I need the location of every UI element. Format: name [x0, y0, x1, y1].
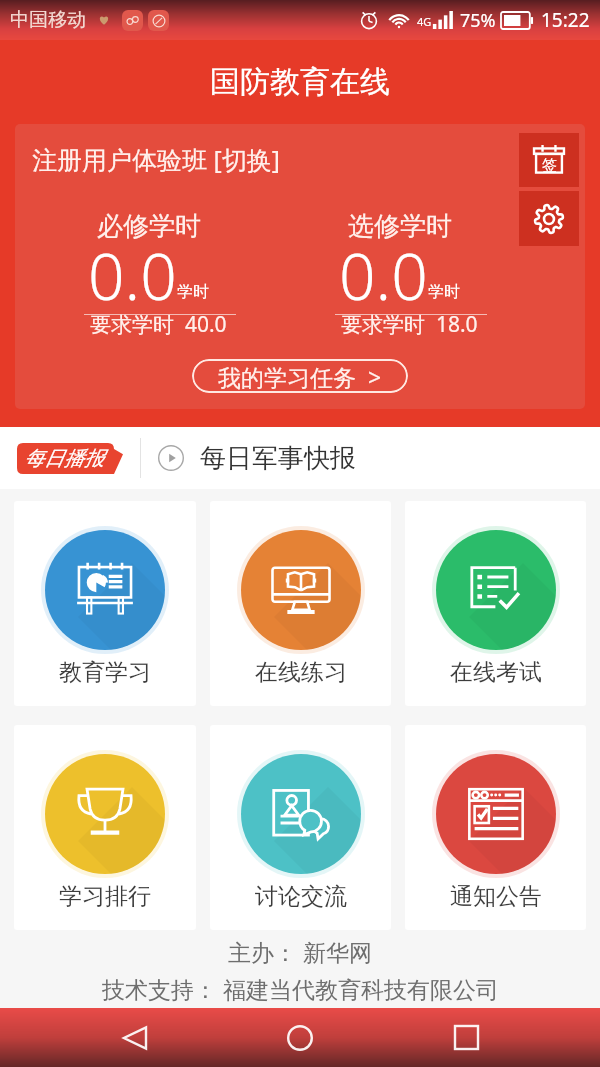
staticText: 必修学时 [97, 210, 201, 243]
staticText: 教育学习 [59, 658, 151, 687]
staticText: 4G [417, 14, 432, 29]
staticText: 学时 [428, 282, 460, 302]
button[interactable]: 设置 [519, 191, 579, 246]
button[interactable]: 在线练习 [210, 501, 391, 706]
button[interactable]: 通知公告 [405, 725, 586, 930]
button[interactable]: 签到 [519, 133, 579, 187]
staticText: 0.0 [339, 232, 428, 319]
staticText: 在线练习 [255, 658, 347, 687]
button[interactable]: 教育学习 [14, 501, 196, 706]
staticText: 要求学时 40.0 [90, 310, 227, 339]
staticText: 要求学时 18.0 [341, 310, 478, 339]
staticText: 学时 [177, 282, 209, 302]
staticText: 技术支持： 福建当代教育科技有限公司 [102, 973, 499, 1004]
staticText: 学习排行 [59, 882, 151, 911]
staticText: 通知公告 [450, 882, 542, 911]
staticText: 在线考试 [450, 658, 542, 687]
staticText: 中国移动 [10, 8, 86, 32]
staticText: 75% [460, 8, 496, 33]
staticText: 主办： 新华网 [228, 936, 372, 967]
staticText: 15:22 [541, 7, 590, 33]
staticText: 每日军事快报 [200, 442, 356, 475]
staticText: 讨论交流 [255, 882, 347, 911]
staticText: 0.0 [88, 232, 177, 319]
button[interactable]: Back [102, 1008, 166, 1067]
button[interactable]: 我的学习任务 > [192, 359, 408, 393]
staticText: 我的学习任务 > [218, 361, 382, 392]
staticText: 选修学时 [348, 210, 452, 243]
staticText: 每日播报 [24, 446, 104, 471]
staticText: 签 [542, 156, 557, 175]
button[interactable]: 讨论交流 [210, 725, 391, 930]
staticText: 注册用户体验班 [切换] [32, 142, 280, 176]
staticText: 国防教育在线 [210, 63, 390, 101]
button[interactable]: Home [268, 1008, 332, 1067]
button[interactable]: 在线考试 [405, 501, 586, 706]
button[interactable]: 学习排行 [14, 725, 196, 930]
button[interactable]: Recents [434, 1008, 498, 1067]
